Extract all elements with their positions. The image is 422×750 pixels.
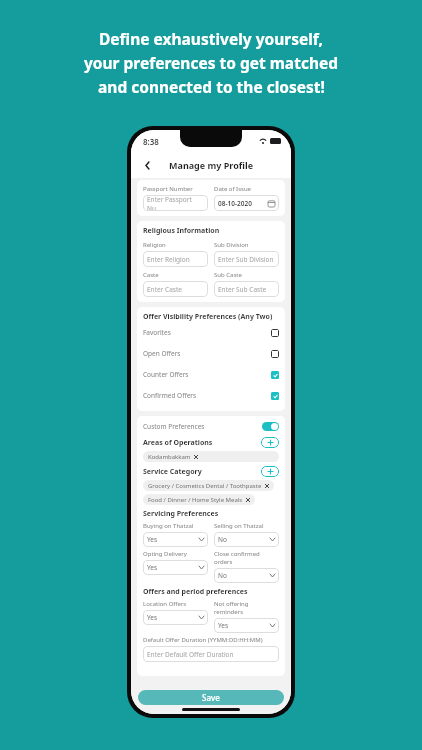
button[interactable]: Yes	[143, 610, 208, 625]
button[interactable]: Enter Religion	[143, 251, 208, 267]
button[interactable]: Yes	[143, 532, 208, 547]
staticText: Kodambakkam	[148, 453, 191, 461]
staticText: Enter Religion	[147, 255, 190, 264]
button[interactable]: Save	[138, 690, 284, 705]
staticText: Counter Offers	[143, 370, 271, 379]
staticText: Date of Issue	[214, 185, 251, 193]
button[interactable]: Enter Sub Division	[214, 251, 279, 267]
staticText: Yes	[147, 613, 158, 622]
staticText: Open Offers	[143, 349, 271, 358]
staticText: Favorites	[143, 328, 271, 337]
staticText: Manage my Profile	[169, 159, 254, 171]
staticText: 8:38	[143, 136, 159, 147]
staticText: Religion	[143, 241, 166, 249]
button[interactable]: Add Areas of Operations	[261, 437, 279, 448]
button[interactable]: Open Offers	[143, 343, 279, 364]
staticText: Enter Sub Caste	[218, 285, 267, 294]
staticText: No	[218, 571, 227, 580]
staticText: Yes	[218, 621, 229, 630]
staticText: Opting Delivery	[143, 550, 187, 558]
button[interactable]: No	[214, 532, 279, 547]
staticText: Servicing Preferences	[143, 509, 219, 519]
staticText: Confirmed Offers	[143, 391, 271, 400]
staticText: 08-10-2020	[218, 199, 252, 208]
button[interactable]: Enter Caste	[143, 281, 208, 297]
staticText: Offer Visibility Preferences (Any Two)	[143, 312, 273, 322]
staticText: your preferences to get matched	[84, 52, 338, 73]
staticText: Buying on Thatzal	[143, 522, 194, 530]
staticText: Food / Dinner / Home Style Meals	[148, 496, 243, 504]
button[interactable]: Counter Offers	[143, 364, 279, 385]
staticText: Not offering reminders	[214, 600, 279, 616]
staticText: Selling on Thatzal	[214, 522, 264, 530]
staticText: Default Offer Duration (YYMM:DD:HH:MM)	[143, 636, 263, 644]
staticText: Enter Default Offer Duration	[147, 650, 234, 659]
staticText: and connected to the closest!	[98, 76, 325, 97]
button[interactable]: Yes	[143, 560, 208, 575]
staticText: Enter Passport Nu...	[147, 195, 204, 211]
staticText: Service Category	[143, 467, 261, 477]
button[interactable]: Add Service Category	[261, 466, 279, 477]
staticText: Offers and period preferences	[143, 587, 248, 597]
button[interactable]: Favorites	[143, 322, 279, 343]
button[interactable]: Kodambakkam	[143, 451, 279, 462]
button[interactable]: Custom Preferences	[143, 420, 279, 433]
button[interactable]: Enter Passport Nu...	[143, 195, 208, 211]
button[interactable]: Grocery / Cosmetics Dental / Toothpaste	[143, 480, 274, 491]
staticText: Sub Division	[214, 241, 249, 249]
button[interactable]: Food / Dinner / Home Style Meals	[143, 494, 255, 505]
staticText: Yes	[147, 563, 158, 572]
button[interactable]: Back	[139, 157, 156, 174]
staticText: Sub Caste	[214, 271, 242, 279]
staticText: Define exhaustively yourself,	[99, 28, 323, 49]
button[interactable]: Confirmed Offers	[143, 385, 279, 406]
staticText: Custom Preferences	[143, 422, 262, 431]
staticText: Location Offers	[143, 600, 187, 608]
button[interactable]: No	[214, 568, 279, 583]
staticText: Yes	[147, 535, 158, 544]
staticText: Enter Caste	[147, 285, 182, 294]
button[interactable]: Yes	[214, 618, 279, 633]
button[interactable]: 08-10-2020	[214, 195, 279, 211]
staticText: Enter Sub Division	[218, 255, 274, 264]
staticText: Passport Number	[143, 185, 193, 193]
button[interactable]: Enter Default Offer Duration	[143, 646, 279, 662]
staticText: Save	[202, 692, 220, 703]
staticText: Religious Information	[143, 226, 220, 236]
button[interactable]: Enter Sub Caste	[214, 281, 279, 297]
staticText: Areas of Operations	[143, 438, 261, 448]
staticText: Close confirmed orders	[214, 550, 279, 566]
staticText: Caste	[143, 271, 159, 279]
staticText: Grocery / Cosmetics Dental / Toothpaste	[148, 482, 262, 490]
staticText: No	[218, 535, 227, 544]
